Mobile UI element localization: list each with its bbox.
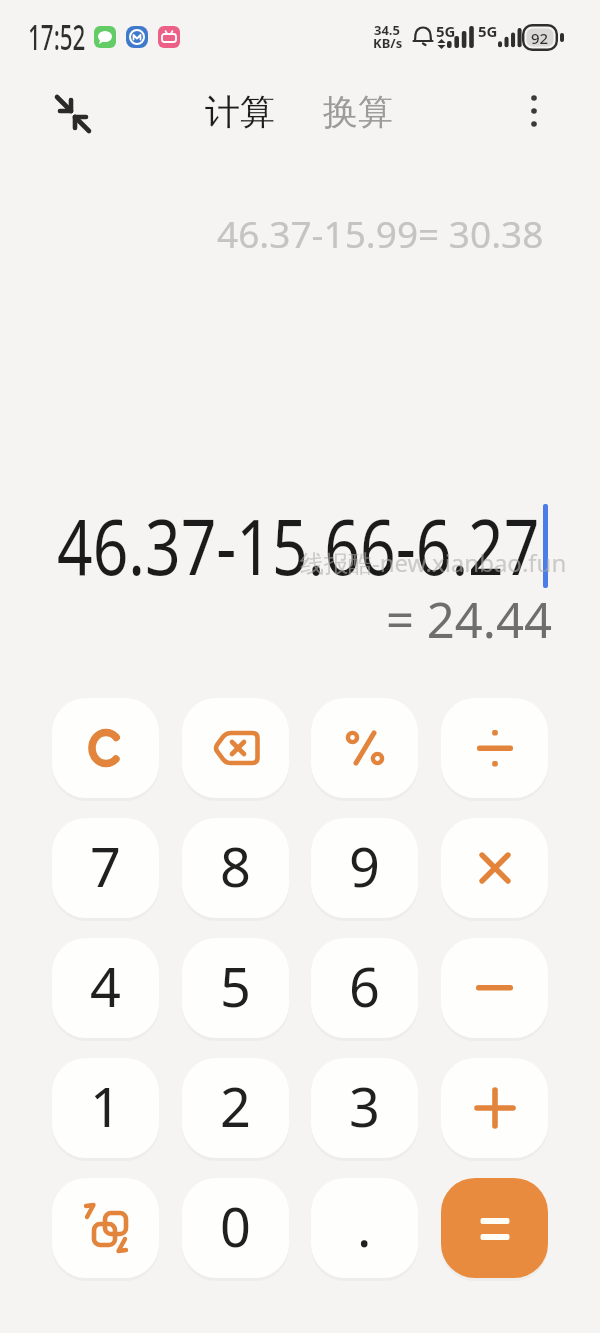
staticText: 计算 bbox=[205, 90, 275, 134]
button[interactable]: 5 bbox=[182, 938, 289, 1038]
staticText: 46.37-15.99= 30.38 bbox=[217, 208, 544, 258]
button[interactable]: 7 bbox=[52, 818, 159, 918]
staticText: 换算 bbox=[323, 90, 393, 134]
button[interactable]: 2 bbox=[182, 1058, 289, 1158]
button[interactable] bbox=[522, 92, 546, 132]
button[interactable] bbox=[441, 938, 548, 1038]
staticText: 1 bbox=[90, 1069, 121, 1143]
button[interactable]: 6 bbox=[311, 938, 418, 1038]
button[interactable] bbox=[182, 698, 289, 798]
staticText: 4 bbox=[90, 949, 121, 1023]
button[interactable] bbox=[50, 90, 94, 136]
staticText: 34.5 bbox=[374, 21, 400, 39]
button[interactable] bbox=[441, 1058, 548, 1158]
staticText: 3 bbox=[349, 1069, 380, 1143]
staticText: 2 bbox=[220, 1069, 251, 1143]
staticText: . bbox=[357, 1189, 372, 1263]
button[interactable]: 3 bbox=[311, 1058, 418, 1158]
button[interactable]: 9 bbox=[311, 818, 418, 918]
button[interactable]: 换算 bbox=[322, 90, 394, 134]
staticText: 6 bbox=[349, 949, 380, 1023]
staticText: 7 bbox=[90, 829, 121, 903]
staticText: 92 bbox=[531, 28, 549, 48]
staticText: 5 bbox=[220, 949, 251, 1023]
button[interactable]: 1 bbox=[52, 1058, 159, 1158]
staticText: 0 bbox=[220, 1189, 251, 1263]
staticText: 9 bbox=[349, 829, 380, 903]
button[interactable] bbox=[311, 698, 418, 798]
button[interactable] bbox=[441, 818, 548, 918]
button[interactable]: 计算 bbox=[204, 90, 276, 134]
staticText: 5G bbox=[478, 21, 498, 41]
staticText: 8 bbox=[220, 829, 251, 903]
button[interactable] bbox=[441, 1178, 548, 1278]
button[interactable]: 0 bbox=[182, 1178, 289, 1278]
staticText: KB/s bbox=[373, 34, 403, 52]
staticText: 5G bbox=[436, 21, 456, 41]
staticText: 线报酷-new.xianbao.fun bbox=[300, 546, 567, 579]
staticText: = 24.44 bbox=[386, 586, 553, 653]
button[interactable] bbox=[52, 1178, 159, 1278]
button[interactable] bbox=[441, 698, 548, 798]
button[interactable] bbox=[52, 698, 159, 798]
button[interactable]: . bbox=[311, 1178, 418, 1278]
button[interactable]: 4 bbox=[52, 938, 159, 1038]
button[interactable]: 8 bbox=[182, 818, 289, 918]
